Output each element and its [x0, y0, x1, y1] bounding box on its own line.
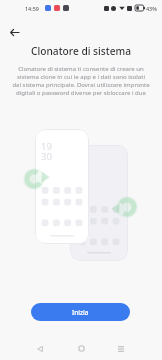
- staticText: 30: [41, 150, 52, 163]
- staticText: 19: [41, 140, 52, 153]
- staticText: 14:59: [25, 5, 39, 12]
- staticText: Clonatore di sistema ti consente di crea…: [0, 65, 162, 97]
- button[interactable]: Back: [29, 338, 50, 359]
- button[interactable]: Inizia: [31, 303, 130, 321]
- button[interactable]: Back: [4, 22, 25, 43]
- staticText: 43%: [146, 5, 157, 12]
- button[interactable]: Home: [71, 338, 92, 359]
- button[interactable]: Recent apps: [110, 338, 131, 359]
- staticText: Clonatore di sistema: [0, 44, 162, 58]
- staticText: Inizia: [72, 308, 89, 317]
